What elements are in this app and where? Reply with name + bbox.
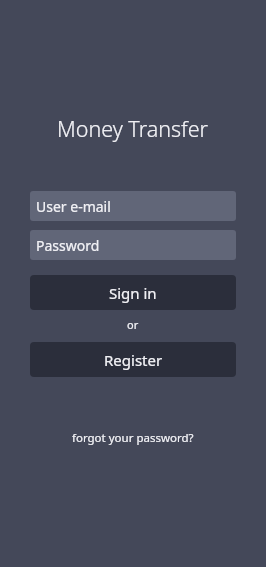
staticText: Money Transfer <box>57 114 209 143</box>
button[interactable]: Password <box>30 230 236 260</box>
staticText: or <box>127 317 139 332</box>
button[interactable]: Register <box>30 342 236 377</box>
button[interactable]: Sign in <box>30 275 236 310</box>
staticText: Register <box>104 350 163 370</box>
staticText: User e-mail <box>36 197 111 216</box>
button[interactable]: User e-mail <box>30 191 236 221</box>
staticText: Password <box>36 236 100 255</box>
button[interactable]: forgot your password? <box>72 430 194 446</box>
staticText: Sign in <box>109 283 157 303</box>
